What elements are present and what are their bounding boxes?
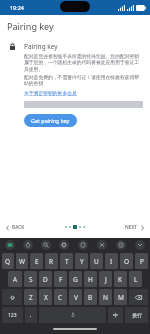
staticText: N <box>103 293 108 302</box>
staticText: A <box>13 275 18 284</box>
staticText: G <box>73 275 78 284</box>
staticText: K <box>118 275 123 284</box>
button[interactable]: U <box>90 253 103 269</box>
button[interactable]: G <box>69 271 82 287</box>
staticText: D <box>43 275 48 284</box>
button[interactable]: B <box>84 289 97 305</box>
button[interactable]: Gboard <box>5 240 15 250</box>
button[interactable]: Settings <box>59 240 69 250</box>
staticText: 关于测定密钥的更多信息 <box>24 90 77 96</box>
button[interactable]: W <box>16 253 28 269</box>
staticText: Z <box>29 293 33 302</box>
staticText: T <box>65 257 69 266</box>
staticText: BACK <box>12 224 25 231</box>
button[interactable]: Search <box>41 240 51 250</box>
staticText: 换行 <box>132 312 142 318</box>
button[interactable]: 换行 <box>125 307 148 323</box>
button[interactable]: Text edit <box>116 240 126 250</box>
staticText: Get pairing key <box>31 117 70 124</box>
staticText: , <box>30 312 32 319</box>
staticText: 19:24 <box>10 4 24 11</box>
staticText: 123 <box>8 312 17 319</box>
button[interactable]: K <box>114 271 127 287</box>
button[interactable]: Clipboard <box>78 240 88 250</box>
staticText: L <box>134 275 138 284</box>
button[interactable]: J <box>99 271 112 287</box>
button[interactable]: Get pairing key <box>24 114 77 127</box>
button[interactable]: M <box>114 289 127 305</box>
button[interactable]: 中 <box>108 307 123 323</box>
staticText: H <box>88 275 93 284</box>
button[interactable]: NEXT <box>119 219 150 236</box>
staticText: B <box>88 293 93 302</box>
staticText: O <box>124 257 130 266</box>
button[interactable]: I <box>105 253 118 269</box>
button[interactable]: X <box>39 289 52 305</box>
button[interactable]: A <box>8 271 22 287</box>
staticText: E <box>35 257 39 266</box>
button[interactable]: N <box>99 289 112 305</box>
button[interactable]: F <box>54 271 67 287</box>
staticText: W <box>19 257 26 266</box>
staticText: Y <box>80 257 84 266</box>
button[interactable]: Backspace <box>129 289 148 305</box>
button[interactable]: S <box>24 271 37 287</box>
button[interactable]: P <box>135 253 148 269</box>
staticText: X <box>44 293 48 302</box>
staticText: C <box>58 293 63 302</box>
staticText: F <box>59 275 63 284</box>
button[interactable]: Q <box>2 253 14 269</box>
button[interactable]: D <box>39 271 52 287</box>
staticText: Pairing key <box>7 20 54 32</box>
button[interactable]: Shift <box>2 289 22 305</box>
button[interactable]: L <box>129 271 142 287</box>
staticText: Q <box>5 257 11 266</box>
button[interactable]: 123 <box>2 307 23 323</box>
staticText: P <box>140 257 144 266</box>
button[interactable]: E <box>30 253 43 269</box>
button[interactable]: More <box>135 240 145 250</box>
staticText: U <box>94 257 99 266</box>
staticText: R <box>49 257 54 266</box>
staticText: V <box>74 293 78 302</box>
button[interactable]: V <box>69 289 82 305</box>
button[interactable]: , <box>25 307 37 323</box>
button[interactable]: Translate <box>97 240 107 250</box>
button[interactable]: 关于测定密钥的更多信息 <box>24 90 77 96</box>
button[interactable]: Y <box>75 253 88 269</box>
staticText: 配对是您连接智能手表所需的特殊凭据。您的配对密钥属于您的，一个随机生成的代码将被… <box>24 53 143 72</box>
staticText: M <box>118 293 124 302</box>
staticText: NEXT <box>125 224 138 231</box>
staticText: 配对是免费的，不需要许可证！请使用在线教程获得帮助的密钥 <box>24 74 143 86</box>
button[interactable]: R <box>45 253 58 269</box>
button[interactable]: Z <box>24 289 37 305</box>
button[interactable]: Stickers <box>23 240 33 250</box>
button[interactable]: H <box>84 271 97 287</box>
staticText: Pairing key <box>24 42 58 51</box>
staticText: S <box>29 275 33 284</box>
staticText: I <box>110 257 113 266</box>
button[interactable]: Voice input <box>39 307 106 323</box>
staticText: J <box>105 275 107 284</box>
button[interactable]: T <box>60 253 73 269</box>
staticText: 中 <box>113 312 118 318</box>
button[interactable]: BACK <box>0 219 31 236</box>
button[interactable]: O <box>120 253 133 269</box>
button[interactable]: C <box>54 289 67 305</box>
